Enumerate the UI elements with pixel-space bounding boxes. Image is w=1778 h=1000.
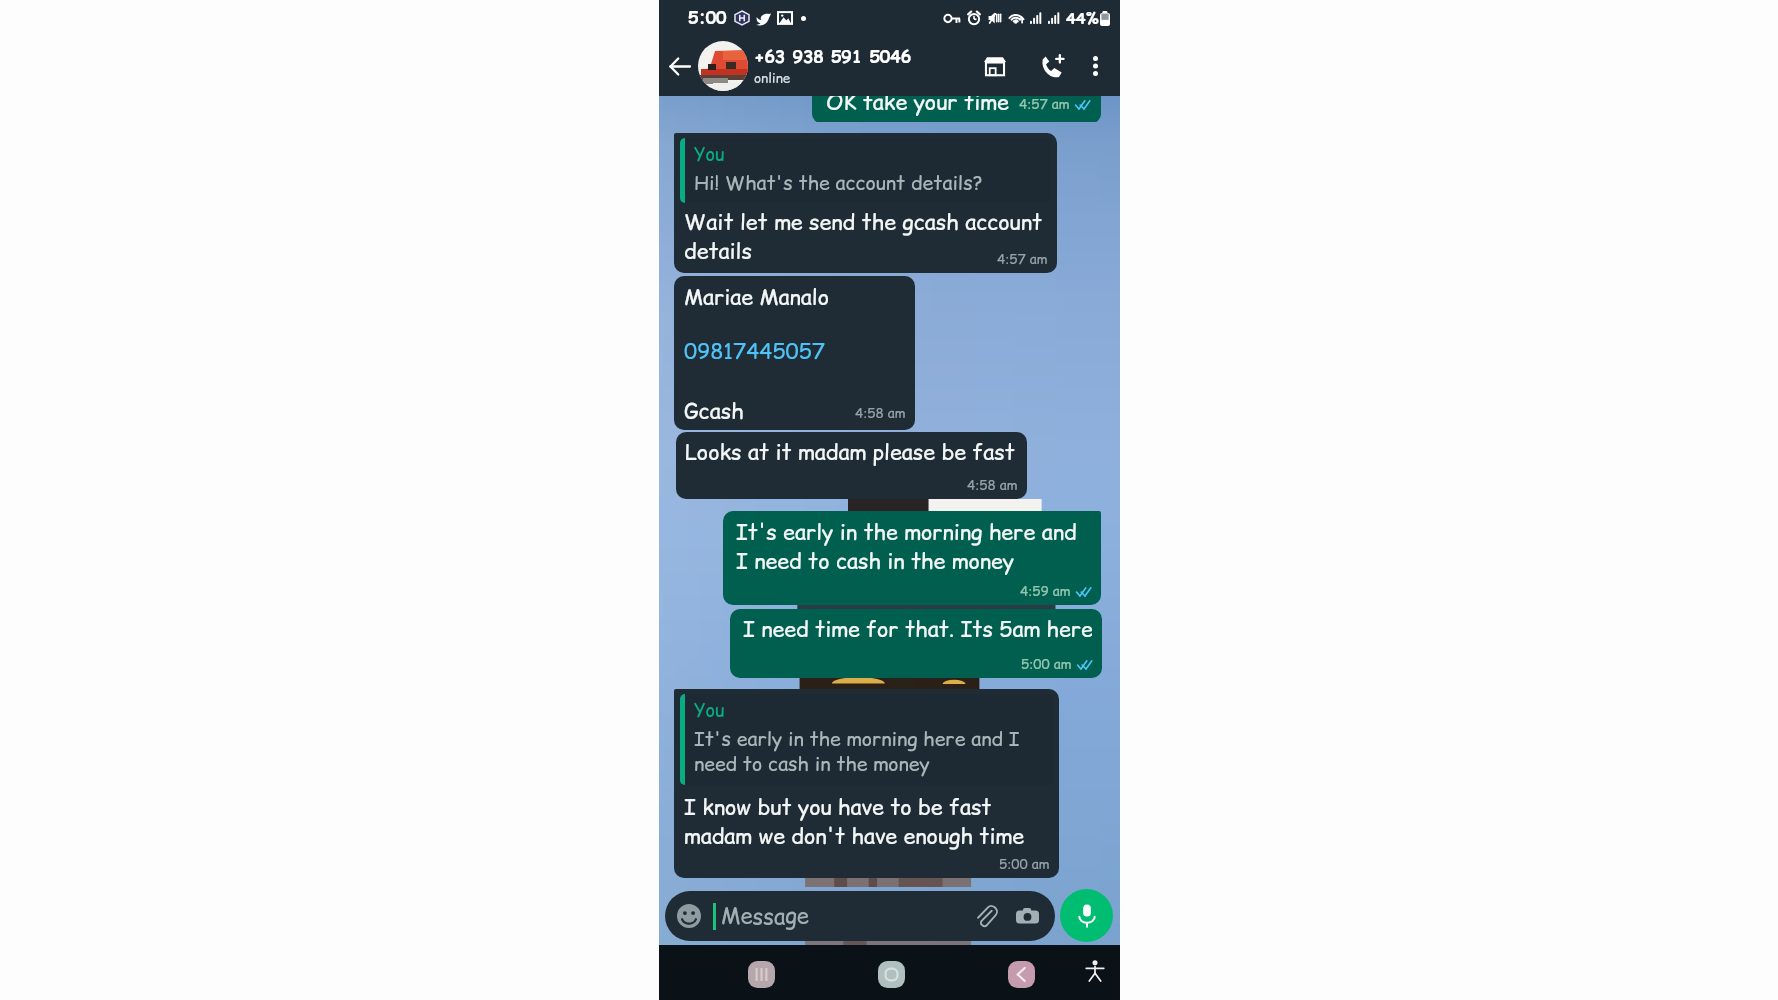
button[interactable]: Attach: [972, 902, 1000, 930]
staticText: 5:00 am: [999, 855, 1050, 874]
button[interactable]: You: [674, 689, 1059, 878]
staticText: I know but you have to be fast madam we …: [684, 792, 1050, 851]
button[interactable]: More options: [1078, 51, 1112, 81]
button[interactable]: I need time for that. Its 5am here: [730, 609, 1102, 678]
staticText: 4:59 am: [1020, 582, 1071, 601]
staticText: Wait let me send the gcash account detai…: [684, 207, 1048, 266]
button[interactable]: Home: [878, 961, 905, 988]
staticText: 4:57 am: [997, 250, 1048, 269]
button[interactable]: Message: [665, 891, 1055, 941]
staticText: online: [754, 69, 791, 88]
button[interactable]: You: [674, 133, 1057, 273]
staticText: Message: [721, 901, 809, 932]
staticText: It's early in the morning here and I nee…: [736, 517, 1091, 576]
staticText: Mariae Manalo: [684, 282, 829, 312]
staticText: OK take your time: [826, 96, 1009, 117]
staticText: You: [694, 142, 725, 167]
staticText: Hi! What's the account details?: [694, 169, 983, 196]
staticText: 4:58 am: [967, 476, 1018, 495]
button[interactable]: Looks at it madam please be fast: [676, 432, 1027, 499]
staticText: I need time for that. Its 5am here: [743, 614, 1092, 644]
button[interactable]: OK take your time: [812, 96, 1101, 122]
button[interactable]: Accessibility: [1084, 960, 1106, 982]
staticText: 09817445057: [684, 336, 825, 366]
button[interactable]: Mariae Manalo: [674, 276, 915, 430]
button[interactable]: Record voice message: [1060, 889, 1113, 942]
button[interactable]: Back: [661, 48, 697, 84]
staticText: 4:58 am: [855, 404, 906, 423]
staticText: Looks at it madam please be fast: [685, 437, 1015, 467]
staticText: 5:00: [688, 6, 727, 30]
staticText: It's early in the morning here and I nee…: [694, 725, 1043, 778]
button[interactable]: Profile photo: [698, 41, 748, 91]
staticText: 4:57 am: [1019, 96, 1070, 114]
button[interactable]: Camera: [1013, 902, 1041, 930]
staticText: 5:00 am: [1021, 655, 1072, 674]
button[interactable]: Recent apps: [748, 961, 775, 988]
staticText: Gcash: [684, 396, 744, 426]
button[interactable]: Add to contacts: [1026, 47, 1078, 85]
staticText: +63 938 591 5046: [754, 45, 912, 69]
button[interactable]: Back: [1008, 961, 1035, 988]
staticText: 44%: [1066, 7, 1099, 29]
button[interactable]: It's early in the morning here and I nee…: [723, 511, 1101, 605]
button[interactable]: Business profile: [964, 47, 1026, 85]
staticText: You: [694, 698, 725, 723]
button[interactable]: +63 938 591 5046: [754, 45, 964, 88]
